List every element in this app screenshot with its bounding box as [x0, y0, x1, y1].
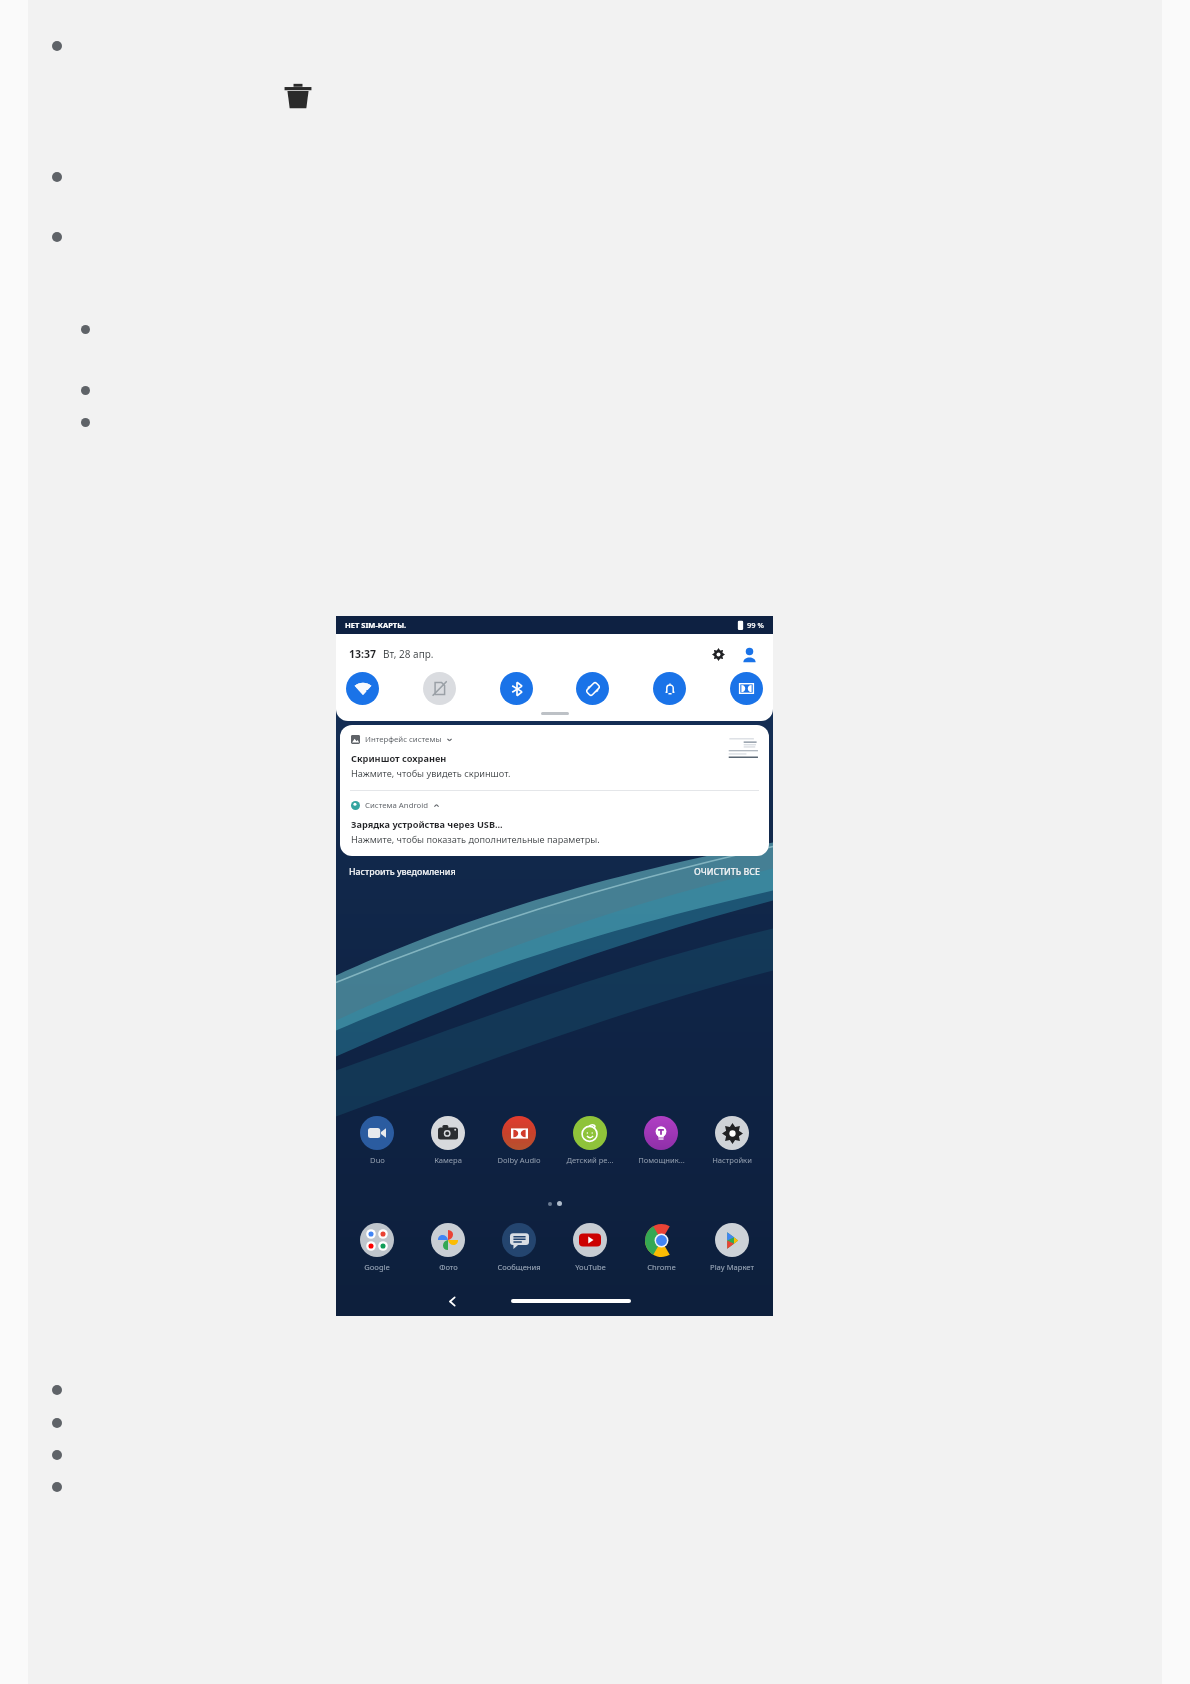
staticText: Duo: [370, 1155, 385, 1165]
staticText: Google: [364, 1262, 390, 1272]
button[interactable]: Wi-Fi: [346, 672, 379, 705]
staticText: Система Android: [365, 800, 429, 811]
staticText: 13:37: [349, 647, 376, 661]
staticText: Dolby Audio: [497, 1155, 541, 1165]
button[interactable]: Система Android: [340, 791, 769, 856]
button[interactable]: Детский ре...: [557, 1115, 623, 1165]
staticText: Сообщения: [497, 1262, 541, 1272]
button[interactable]: Настроить уведомления: [349, 866, 456, 878]
staticText: Нажмите, чтобы показать дополнительные п…: [351, 833, 600, 846]
staticText: Скриншот сохранен: [351, 752, 447, 765]
button[interactable]: Back: [444, 1293, 460, 1309]
staticText: Фото: [439, 1262, 458, 1272]
staticText: Зарядка устройства через USB...: [351, 818, 503, 831]
button[interactable]: ОЧИСТИТЬ ВСЕ: [694, 866, 760, 878]
button[interactable]: Auto rotate: [576, 672, 609, 705]
button[interactable]: Помощник...: [628, 1115, 694, 1165]
staticText: Вт, 28 апр.: [383, 647, 434, 661]
button[interactable]: Do not disturb: [653, 672, 686, 705]
staticText: ?: [366, 686, 371, 698]
staticText: YouTube: [575, 1262, 606, 1272]
staticText: Настройки: [712, 1155, 752, 1165]
button[interactable]: Home: [511, 1299, 631, 1303]
staticText: Помощник...: [638, 1155, 685, 1165]
button[interactable]: Камера: [415, 1115, 481, 1165]
button[interactable]: Chrome: [628, 1222, 694, 1272]
button[interactable]: Фото: [415, 1222, 481, 1272]
button[interactable]: YouTube: [557, 1222, 623, 1272]
button[interactable]: Интерфейс системы: [340, 725, 769, 790]
button[interactable]: Сообщения: [486, 1222, 552, 1272]
staticText: НЕТ SIM-КАРТЫ.: [345, 620, 407, 630]
button[interactable]: SIM: [423, 672, 456, 705]
staticText: Chrome: [647, 1262, 676, 1272]
button[interactable]: Duo: [344, 1115, 410, 1165]
staticText: Детский ре...: [566, 1155, 614, 1165]
staticText: 99 %: [747, 620, 764, 630]
button[interactable]: Play Маркет: [699, 1222, 765, 1272]
other: Delete: [282, 80, 314, 112]
staticText: Камера: [434, 1155, 462, 1165]
staticText: Интерфейс системы: [365, 734, 442, 745]
button[interactable]: Dolby: [730, 672, 763, 705]
button[interactable]: Settings: [707, 643, 729, 665]
button[interactable]: Google: [344, 1222, 410, 1272]
staticText: Нажмите, чтобы увидеть скриншот.: [351, 767, 511, 780]
button[interactable]: Dolby Audio: [486, 1115, 552, 1165]
staticText: Play Маркет: [710, 1262, 754, 1272]
staticText: Настроить уведомления: [349, 866, 456, 878]
button[interactable]: Настройки: [699, 1115, 765, 1165]
staticText: ОЧИСТИТЬ ВСЕ: [694, 866, 760, 878]
button[interactable]: Bluetooth: [500, 672, 533, 705]
button[interactable]: User: [738, 643, 760, 665]
